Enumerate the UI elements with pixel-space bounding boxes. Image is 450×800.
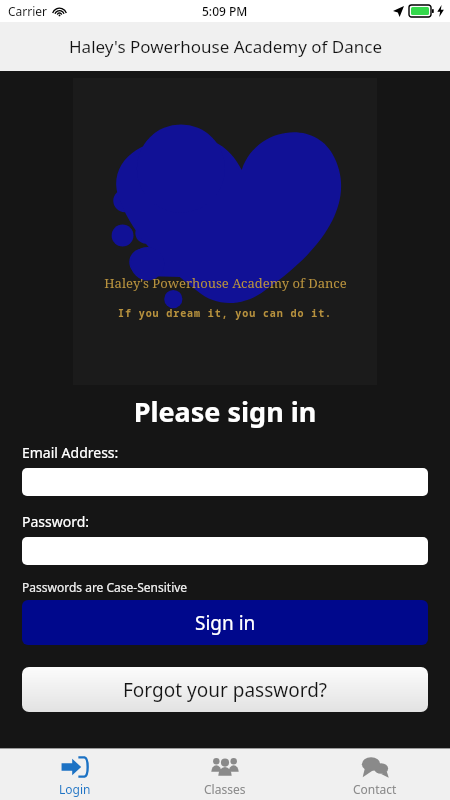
button[interactable]: Sign in: [22, 600, 428, 645]
staticText: Forgot your password?: [123, 677, 328, 703]
button[interactable]: Contact: [300, 749, 450, 800]
staticText: Haley's Powerhouse Academy of Dance: [69, 35, 382, 58]
staticText: Classes: [204, 781, 246, 797]
staticText: Passwords are Case-Sensitive: [22, 579, 188, 595]
staticText: 5:09 PM: [202, 3, 248, 19]
button[interactable]: [22, 537, 428, 565]
button[interactable]: Login: [0, 749, 150, 800]
staticText: Contact: [353, 781, 397, 797]
button[interactable]: Classes: [150, 749, 300, 800]
staticText: Email Address:: [22, 443, 119, 462]
button[interactable]: Forgot your password?: [22, 667, 428, 712]
staticText: Password:: [22, 512, 90, 531]
staticText: If you dream it, you can do it.: [118, 306, 332, 320]
staticText: Please sign in: [0, 393, 450, 430]
staticText: Sign in: [195, 610, 256, 636]
staticText: Haley's Powerhouse Academy of Dance: [104, 274, 347, 292]
staticText: Login: [59, 781, 91, 797]
staticText: Carrier: [8, 3, 48, 19]
button[interactable]: [22, 468, 428, 496]
